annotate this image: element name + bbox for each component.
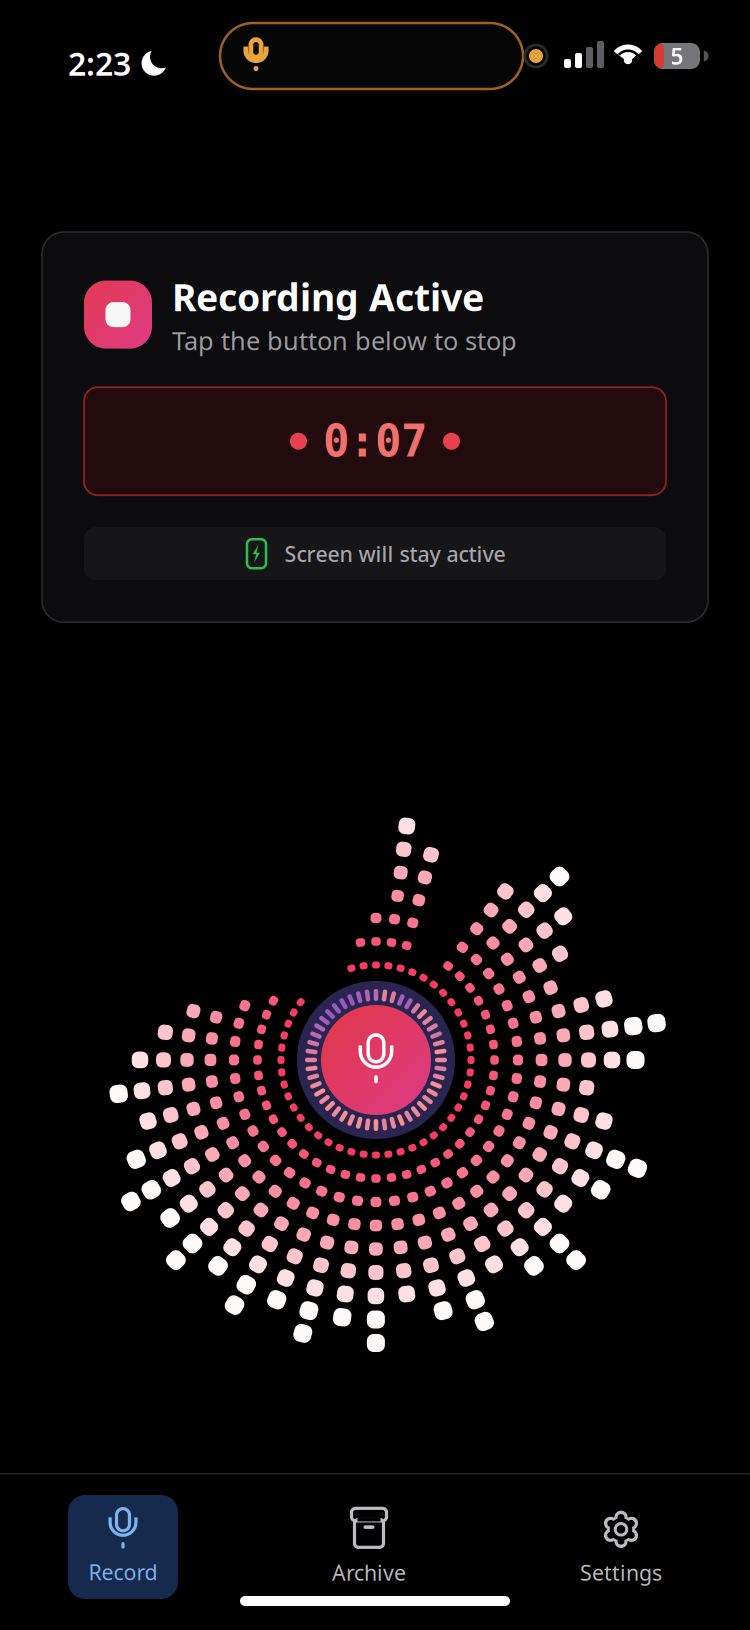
staticText: Tap the button below to stop (172, 324, 517, 357)
button[interactable]: Archive (304, 1495, 434, 1599)
button[interactable]: Record (68, 1495, 178, 1599)
button[interactable]: Stop recording (291, 975, 461, 1145)
staticText: Archive (332, 1558, 406, 1587)
staticText: Record (88, 1558, 157, 1586)
staticText: Settings (580, 1558, 662, 1587)
staticText: 5 (670, 41, 683, 71)
staticText: Recording Active (172, 272, 484, 322)
staticText: Screen will stay active (284, 540, 505, 568)
staticText: 2:23 (68, 42, 131, 84)
button[interactable]: Settings (556, 1495, 686, 1599)
staticText: 0:07 (323, 416, 427, 466)
